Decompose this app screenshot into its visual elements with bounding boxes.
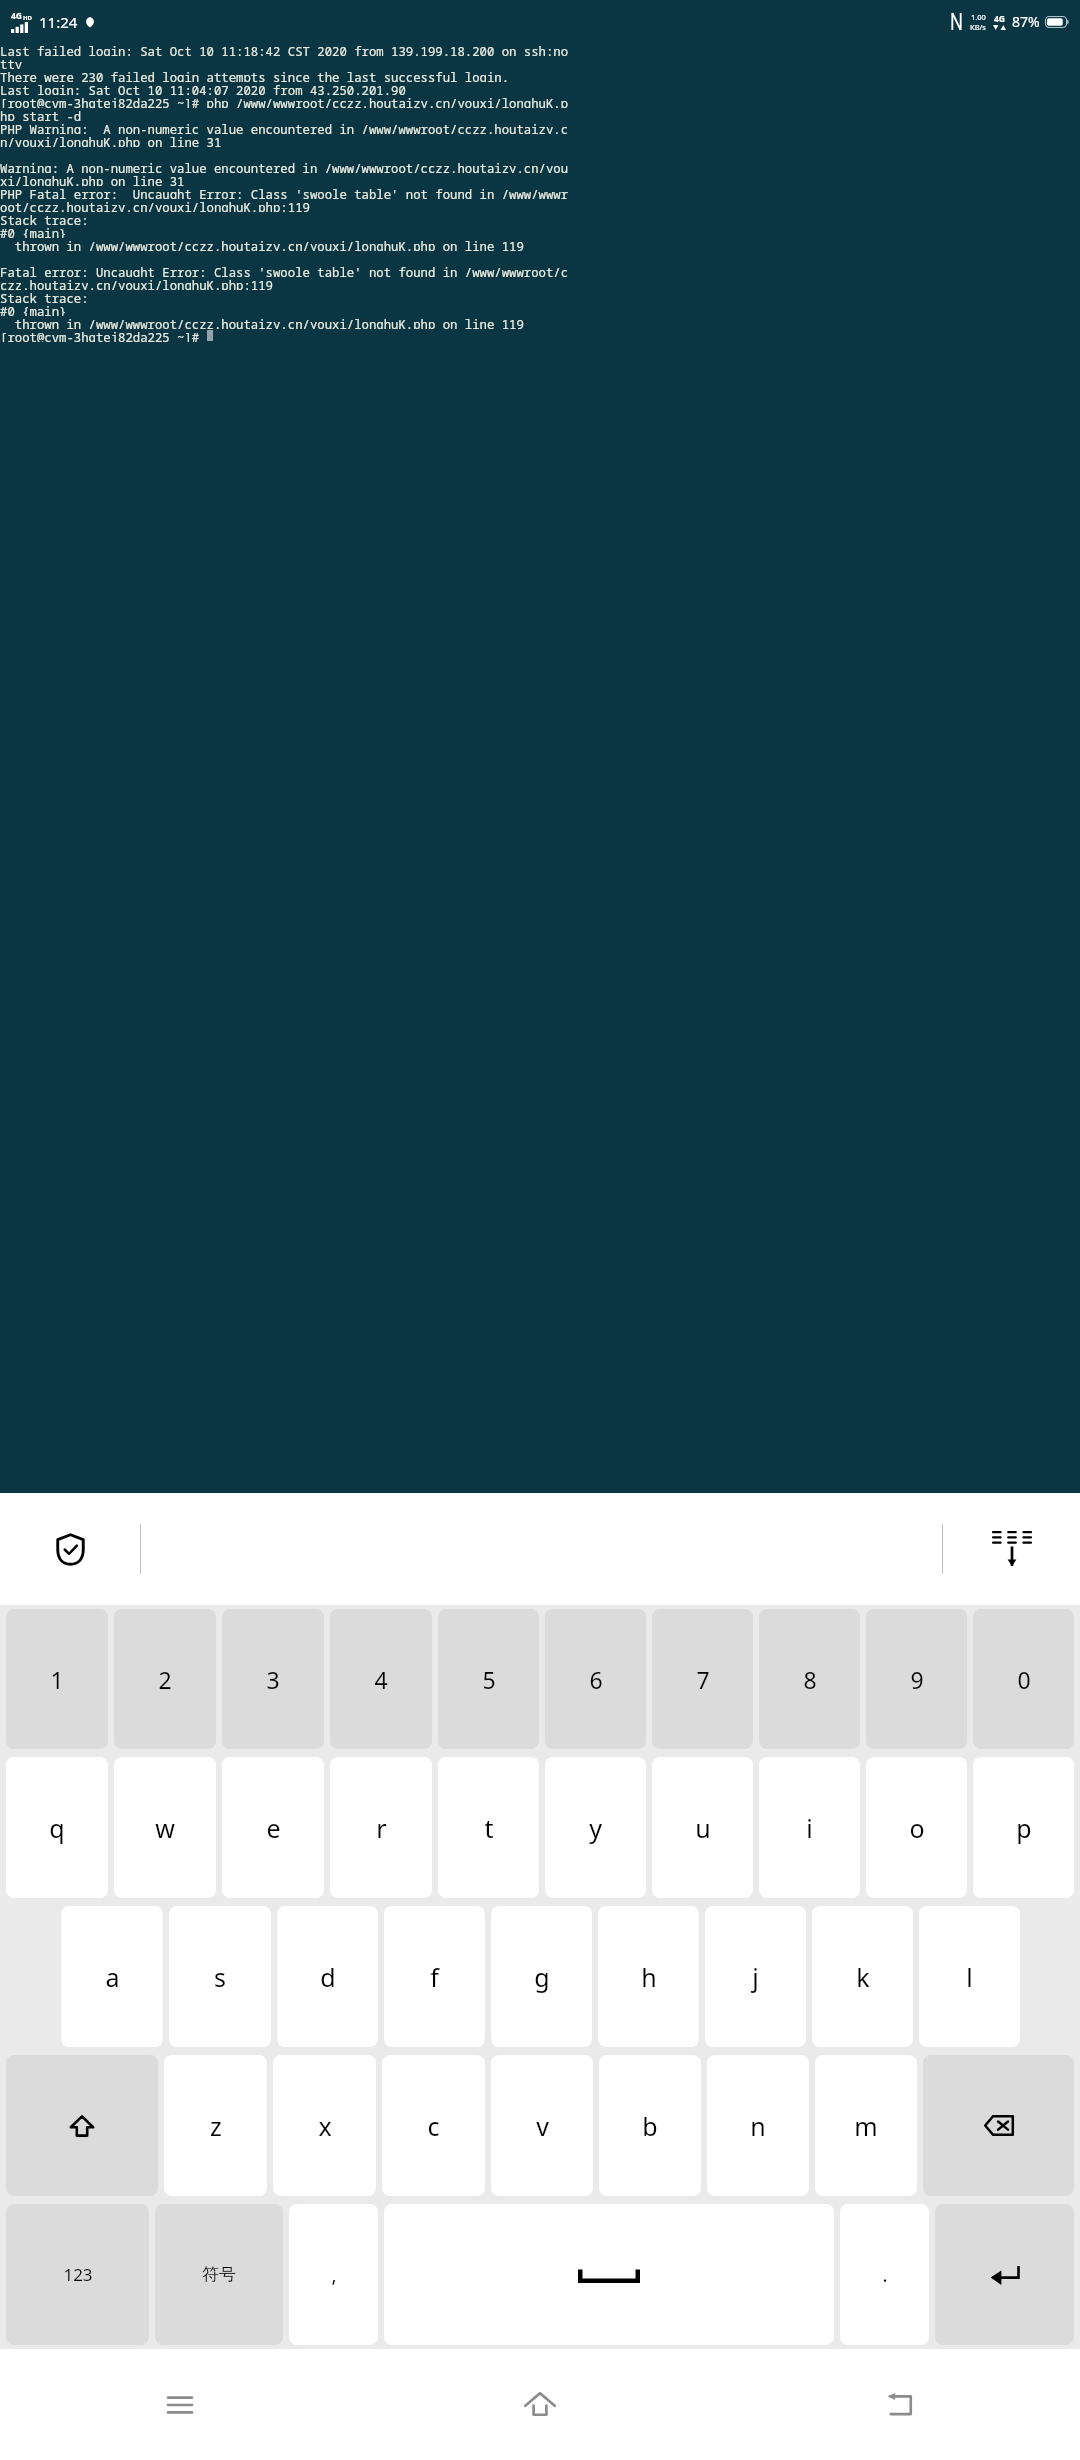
button[interactable]: w bbox=[114, 1757, 216, 1898]
staticText: r bbox=[376, 1811, 387, 1845]
button[interactable]: . bbox=[840, 2204, 929, 2345]
button[interactable]: Recents bbox=[0, 2349, 360, 2460]
staticText: u bbox=[695, 1811, 711, 1845]
button[interactable]: 2 bbox=[114, 1609, 216, 1749]
staticText: oot/cczz.houtaizy.cn/youxi/longhuK.php:1… bbox=[0, 199, 310, 212]
button[interactable]: e bbox=[222, 1757, 324, 1898]
staticText: k bbox=[856, 1960, 870, 1994]
button[interactable]: z bbox=[164, 2055, 267, 2196]
button[interactable]: 6 bbox=[545, 1609, 646, 1749]
button[interactable]: g bbox=[491, 1906, 592, 2047]
button[interactable]: v bbox=[491, 2055, 593, 2196]
staticText: czz.houtaizy.cn/youxi/longhuK.php:119 bbox=[0, 277, 273, 290]
button[interactable]: 7 bbox=[652, 1609, 753, 1749]
button[interactable]: 4 bbox=[330, 1609, 432, 1749]
button[interactable]: 123 bbox=[6, 2204, 149, 2345]
staticText: HD bbox=[23, 14, 32, 22]
staticText: a bbox=[105, 1960, 120, 1994]
staticText: 6 bbox=[589, 1664, 603, 1695]
staticText: 2 bbox=[158, 1664, 172, 1695]
staticText: h bbox=[641, 1960, 657, 1994]
button[interactable]: s bbox=[169, 1906, 271, 2047]
staticText: 123 bbox=[63, 2263, 93, 2286]
staticText: [root@cvm-3hqtej82da225 ~]# bbox=[0, 329, 207, 342]
staticText: i bbox=[806, 1811, 813, 1845]
button[interactable]: t bbox=[438, 1757, 539, 1898]
button[interactable]: Shift bbox=[6, 2055, 158, 2196]
staticText: hp start -d bbox=[0, 108, 82, 121]
button[interactable]: l bbox=[919, 1906, 1020, 2047]
staticText: c bbox=[427, 2109, 440, 2143]
button[interactable]: Security bbox=[0, 1493, 140, 1605]
button[interactable]: n bbox=[707, 2055, 809, 2196]
staticText: 5 bbox=[482, 1664, 496, 1695]
staticText: t bbox=[484, 1811, 494, 1845]
staticText: x bbox=[318, 2109, 332, 2143]
button[interactable]: q bbox=[6, 1757, 108, 1898]
button[interactable]: x bbox=[273, 2055, 376, 2196]
staticText: f bbox=[430, 1960, 439, 1994]
staticText: PHP Fatal error: Uncaught Error: Class '… bbox=[0, 186, 569, 199]
button[interactable]: h bbox=[598, 1906, 699, 2047]
staticText: g bbox=[534, 1960, 550, 1994]
staticText: l bbox=[966, 1960, 973, 1994]
button[interactable]: Backspace bbox=[923, 2055, 1074, 2196]
button[interactable]: 8 bbox=[759, 1609, 860, 1749]
button[interactable]: Back bbox=[720, 2349, 1080, 2460]
button[interactable]: k bbox=[812, 1906, 913, 2047]
button[interactable]: r bbox=[330, 1757, 432, 1898]
button[interactable]: Enter bbox=[935, 2204, 1074, 2345]
staticText: . bbox=[882, 2262, 888, 2288]
staticText: n bbox=[750, 2109, 766, 2143]
staticText: Fatal error: Uncaught Error: Class 'swoo… bbox=[0, 264, 569, 277]
button[interactable]: m bbox=[815, 2055, 917, 2196]
button[interactable]: a bbox=[61, 1906, 163, 2047]
staticText: y bbox=[589, 1811, 602, 1845]
button[interactable]: 0 bbox=[973, 1609, 1074, 1749]
button[interactable]: b bbox=[599, 2055, 701, 2196]
staticText: xi/longhuK.php on line 31 bbox=[0, 173, 185, 186]
staticText: 8 bbox=[803, 1664, 817, 1695]
button[interactable]: f bbox=[384, 1906, 485, 2047]
staticText: 3 bbox=[266, 1664, 280, 1695]
staticText: o bbox=[909, 1811, 925, 1845]
staticText: thrown in /www/wwwroot/cczz.houtaizy.cn/… bbox=[0, 316, 524, 329]
button[interactable]: 3 bbox=[222, 1609, 324, 1749]
staticText: Stack trace: bbox=[0, 290, 89, 303]
button[interactable]: 9 bbox=[866, 1609, 967, 1749]
staticText: tty bbox=[0, 56, 23, 69]
button[interactable]: p bbox=[973, 1757, 1074, 1898]
staticText: 7 bbox=[696, 1664, 710, 1695]
staticText: Last login: Sat Oct 10 11:04:07 2020 fro… bbox=[0, 82, 406, 95]
button[interactable]: j bbox=[705, 1906, 806, 2047]
staticText: w bbox=[155, 1811, 175, 1845]
staticText: Stack trace: bbox=[0, 212, 89, 225]
button[interactable]: 1 bbox=[6, 1609, 108, 1749]
staticText: s bbox=[214, 1960, 226, 1994]
button[interactable]: Space bbox=[384, 2204, 834, 2345]
staticText: 1 bbox=[50, 1664, 64, 1695]
button[interactable]: d bbox=[277, 1906, 378, 2047]
button[interactable]: y bbox=[545, 1757, 646, 1898]
staticText: KB/s bbox=[970, 22, 986, 32]
staticText: 0 bbox=[1017, 1664, 1031, 1695]
staticText: d bbox=[320, 1960, 336, 1994]
button[interactable]: o bbox=[866, 1757, 967, 1898]
button[interactable]: Home bbox=[360, 2349, 720, 2460]
button[interactable]: 5 bbox=[438, 1609, 539, 1749]
staticText: b bbox=[642, 2109, 658, 2143]
staticText: 9 bbox=[910, 1664, 924, 1695]
button[interactable]: u bbox=[652, 1757, 753, 1898]
staticText: #0 {main} bbox=[0, 303, 67, 316]
staticText: PHP Warning: A non-numeric value encount… bbox=[0, 121, 569, 134]
staticText: e bbox=[266, 1811, 281, 1845]
staticText: q bbox=[49, 1811, 65, 1845]
button[interactable]: 符号 bbox=[155, 2204, 283, 2345]
button[interactable]: c bbox=[382, 2055, 485, 2196]
button[interactable]: , bbox=[289, 2204, 378, 2345]
button[interactable]: i bbox=[759, 1757, 860, 1898]
staticText: 4 bbox=[374, 1664, 388, 1695]
button[interactable]: Hide keyboard bbox=[943, 1493, 1080, 1605]
staticText: [root@cvm-3hqtej82da225 ~]# php /www/www… bbox=[0, 95, 569, 108]
staticText: thrown in /www/wwwroot/cczz.houtaizy.cn/… bbox=[0, 238, 524, 251]
